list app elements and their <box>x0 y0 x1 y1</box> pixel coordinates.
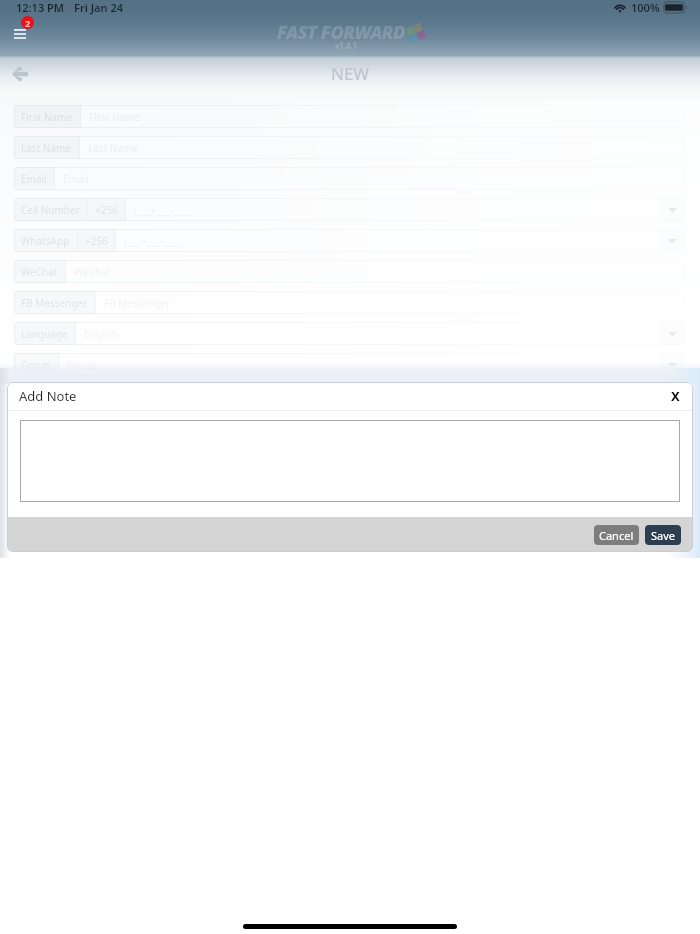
staticText: WhatsApp <box>21 234 70 248</box>
staticText: Cancel <box>599 528 634 543</box>
staticText: Group <box>21 358 51 372</box>
button[interactable]: WeChat <box>14 260 684 283</box>
staticText: X <box>671 387 680 405</box>
button[interactable]: Back <box>3 57 37 91</box>
button[interactable]: Group <box>14 353 684 376</box>
staticText: First Name <box>89 110 141 124</box>
staticText: 2 <box>25 17 31 29</box>
staticText: English <box>84 327 119 341</box>
staticText: 12:13 PM <box>16 0 65 15</box>
staticText: Save <box>651 528 676 543</box>
button[interactable]: Close <box>663 384 687 408</box>
staticText: v1.4.1 <box>335 40 358 51</box>
staticText: NEW <box>331 62 370 85</box>
button[interactable]: Cell Number <box>14 198 684 221</box>
button[interactable]: Cancel <box>594 525 639 545</box>
staticText: Email <box>63 172 89 186</box>
button[interactable] <box>20 420 680 502</box>
staticText: +256 <box>85 234 108 248</box>
staticText: FB Messenger <box>21 296 88 310</box>
staticText: Email <box>21 172 47 186</box>
staticText: Cell Number <box>21 203 80 217</box>
staticText: WeChat <box>21 265 58 279</box>
staticText: FB Messenger <box>104 296 171 310</box>
staticText: +256 <box>95 203 118 217</box>
staticText: Last Name <box>21 141 72 155</box>
staticText: Last Name <box>88 141 139 155</box>
staticText: Group <box>67 358 97 372</box>
button[interactable]: Language <box>14 322 684 345</box>
staticText: First Name <box>21 110 73 124</box>
button[interactable]: Save <box>645 525 681 545</box>
button[interactable]: FB Messenger <box>14 291 684 314</box>
staticText: 100% <box>631 0 660 15</box>
button[interactable]: First Name <box>14 105 684 128</box>
button[interactable]: Last Name <box>14 136 684 159</box>
staticText: Language <box>21 327 68 341</box>
staticText: Fri Jan 24 <box>74 0 123 15</box>
button[interactable]: WhatsApp <box>14 229 684 252</box>
staticText: FAST FORWARD <box>277 20 405 45</box>
staticText: WeChat <box>74 265 111 279</box>
staticText: Add Note <box>19 387 77 405</box>
button[interactable]: Email <box>14 167 684 190</box>
button[interactable]: Menu <box>4 14 40 50</box>
